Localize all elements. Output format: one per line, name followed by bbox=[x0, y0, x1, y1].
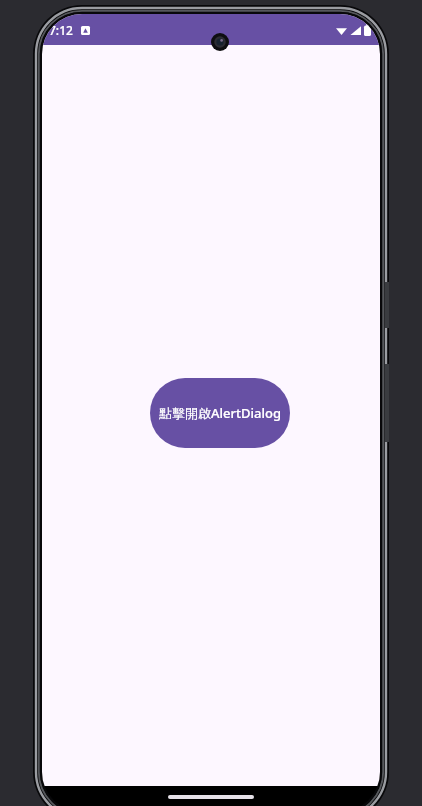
other: Home gesture bar bbox=[168, 795, 254, 799]
other: Front camera bbox=[211, 33, 229, 51]
staticText: 7:12 bbox=[49, 22, 73, 38]
staticText: 點擊開啟AlertDialog bbox=[159, 404, 281, 422]
button[interactable]: 點擊開啟AlertDialog bbox=[150, 378, 290, 448]
